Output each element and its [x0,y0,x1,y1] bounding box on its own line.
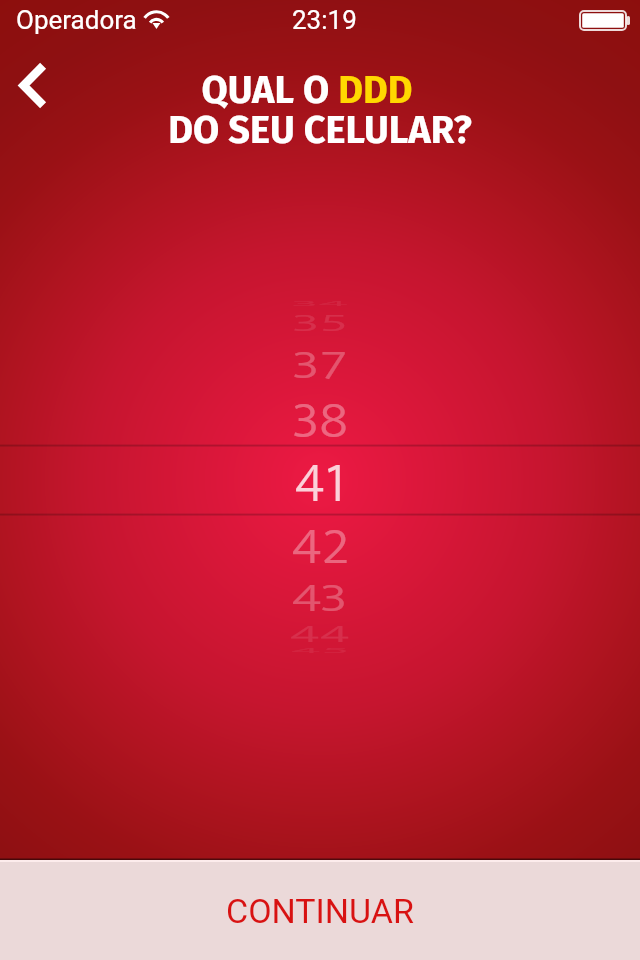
button[interactable]: Back [2,57,64,119]
staticText: QUAL O DDD [0,67,627,113]
staticText: 23:19 [292,5,357,35]
button[interactable]: 45 [0,643,640,655]
staticText: 35 [292,303,348,339]
button[interactable]: 41 [0,438,640,518]
button[interactable]: 44 [0,614,640,650]
staticText: 42 [292,503,349,579]
staticText: 41 [295,438,345,518]
button[interactable]: 38 [0,377,640,453]
staticText: DO SEU CELULAR? [0,107,640,153]
staticText: 34 [291,296,349,308]
button[interactable]: CONTINUAR [0,862,640,960]
button[interactable]: 43 [0,565,640,623]
staticText: 45 [291,643,350,655]
other: Wi-Fi [141,8,175,32]
button[interactable]: 42 [0,503,640,579]
other: Battery full [578,9,634,33]
button[interactable]: 34 [0,296,640,308]
staticText: 43 [292,565,348,623]
staticText: 37 [292,332,348,390]
button[interactable]: 35 [0,303,640,339]
staticText: Operadora [16,5,137,35]
staticText: 38 [292,377,348,453]
button[interactable]: 37 [0,332,640,390]
staticText: 44 [290,614,351,650]
staticText: CONTINUAR [226,891,414,931]
